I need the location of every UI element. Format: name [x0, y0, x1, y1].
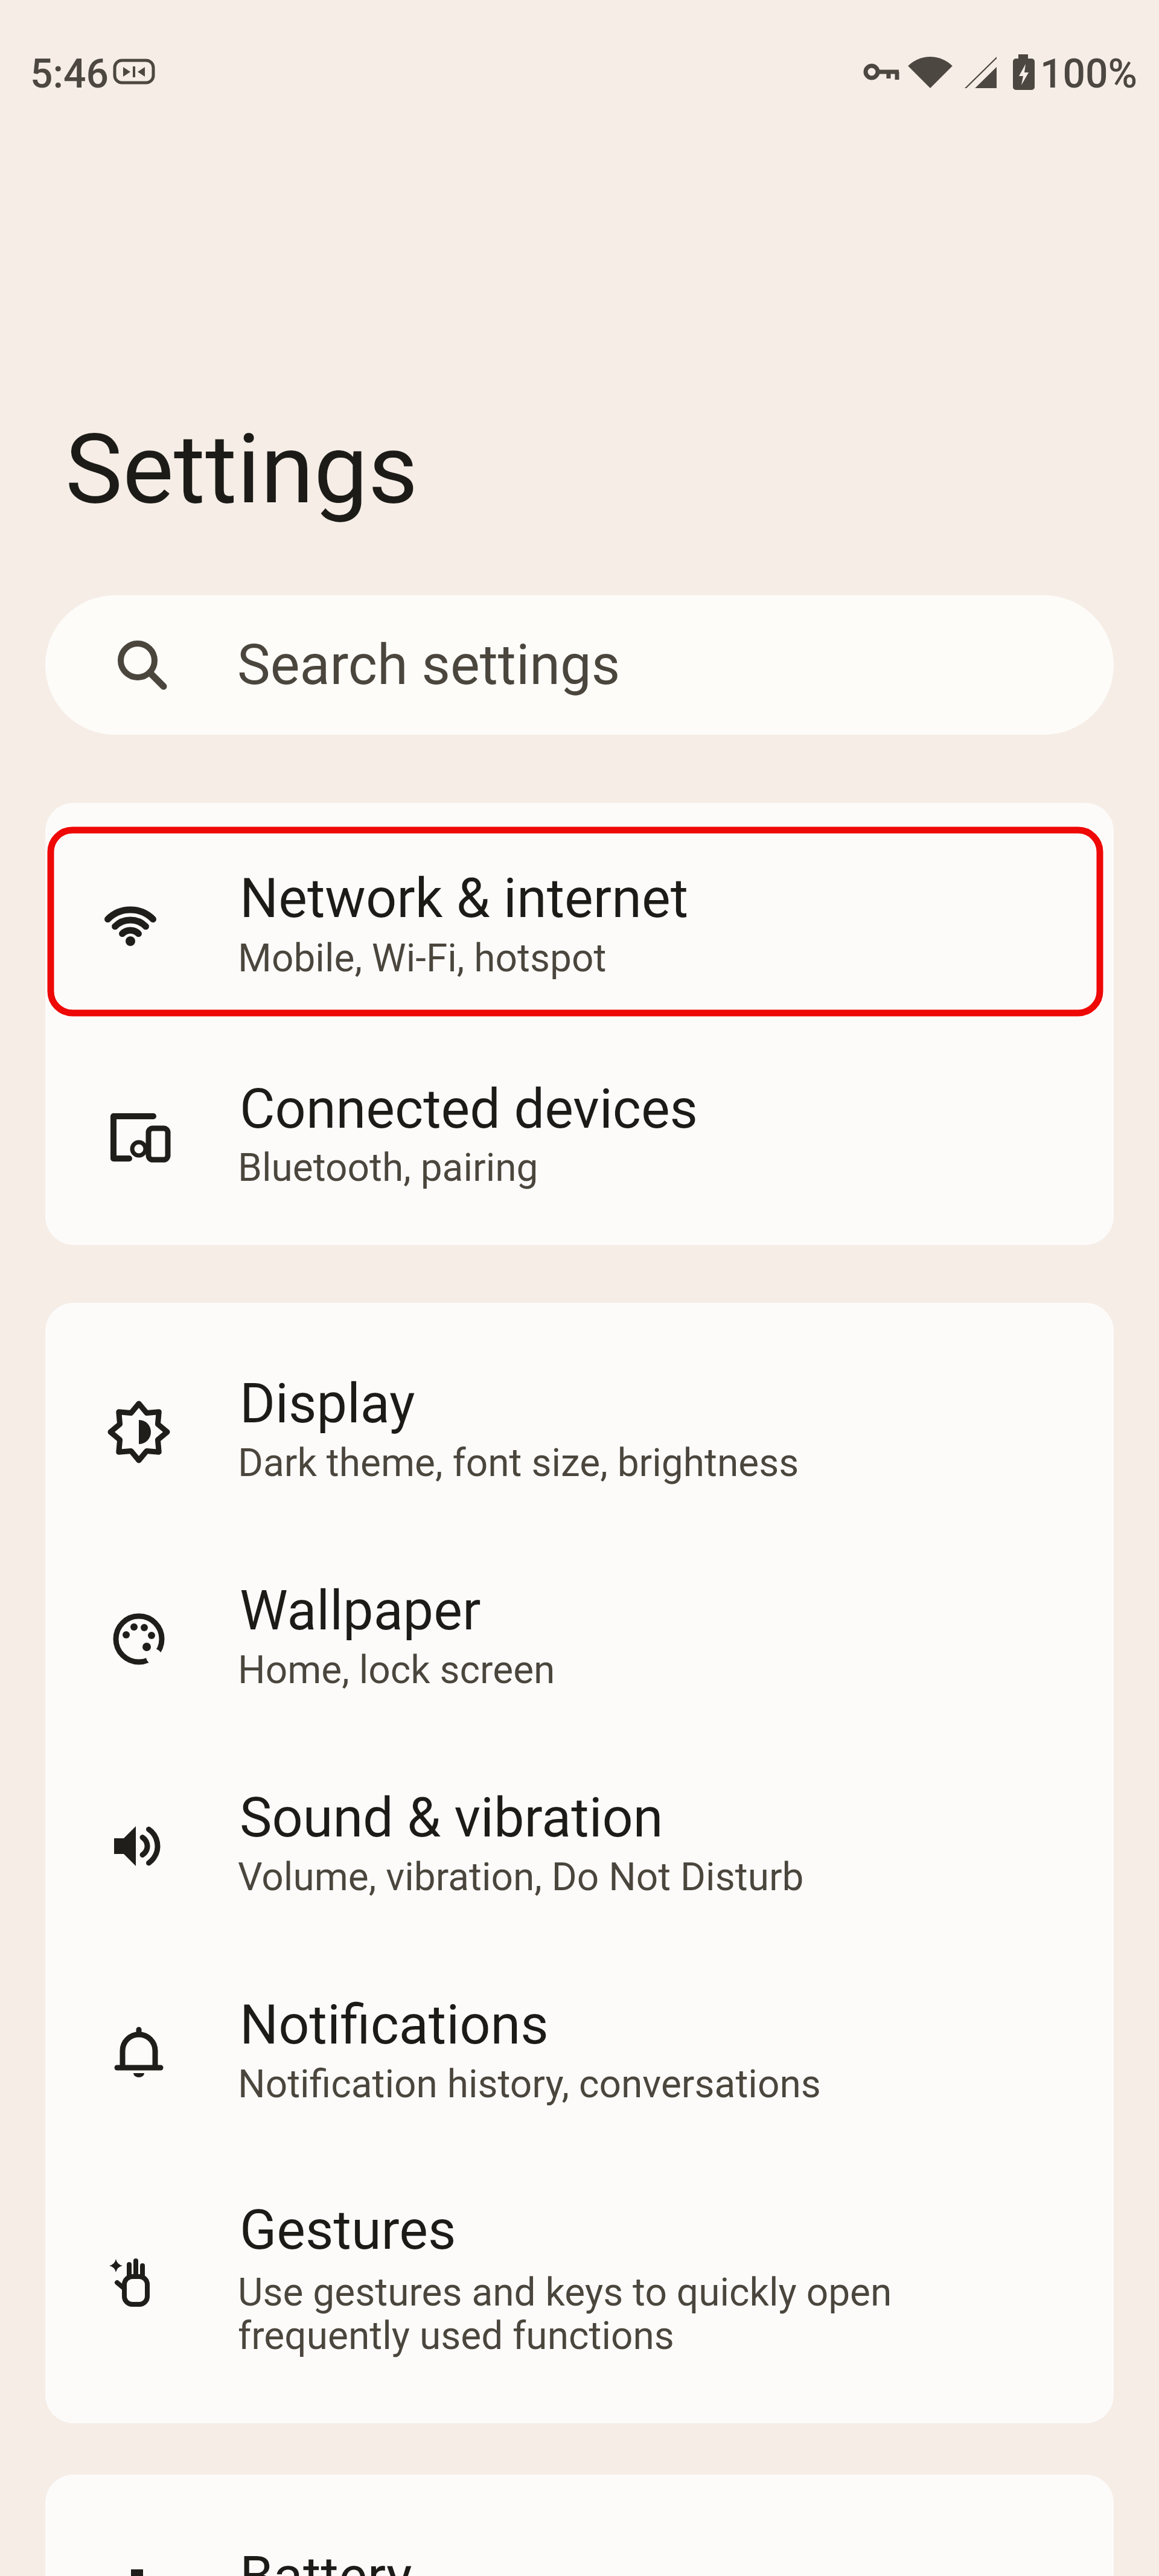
staticText: Search settings [237, 633, 621, 698]
button[interactable] [45, 1019, 1114, 1227]
staticText: Use gestures and keys to quickly open fr… [238, 2270, 892, 2359]
staticText: Dark theme, font size, brightness [238, 1440, 799, 1486]
staticText: Bluetooth, pairing [238, 1145, 538, 1191]
staticText: Battery [240, 2545, 412, 2576]
staticText: 100% [1040, 51, 1138, 97]
staticText: Display [240, 1372, 415, 1436]
button[interactable] [45, 2475, 1114, 2576]
staticText: Settings [65, 413, 418, 526]
button[interactable] [45, 2159, 1114, 2423]
staticText: Sound & vibration [240, 1786, 663, 1850]
button[interactable]: Search settings [45, 595, 1114, 735]
button[interactable] [45, 1328, 1114, 1536]
button[interactable] [45, 1743, 1114, 1951]
staticText: Gestures [240, 2199, 456, 2262]
staticText: Mobile, Wi-Fi, hotspot [238, 936, 607, 981]
staticText: 5:46 [30, 51, 109, 97]
button[interactable] [45, 1536, 1114, 1743]
staticText: Volume, vibration, Do Not Disturb [238, 1855, 804, 1900]
button[interactable] [45, 1951, 1114, 2159]
staticText: Connected devices [240, 1078, 698, 1141]
button[interactable] [45, 811, 1114, 1019]
staticText: Wallpaper [240, 1579, 481, 1643]
staticText: Network & internet [240, 867, 689, 930]
staticText: Notifications [240, 1993, 549, 2057]
staticText: Home, lock screen [238, 1648, 555, 1693]
staticText: Notification history, conversations [238, 2062, 821, 2107]
